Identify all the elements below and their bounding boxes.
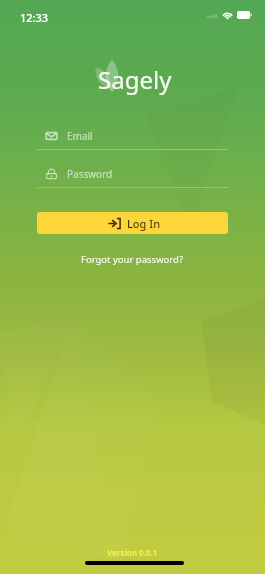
staticText: Version 0.0.1 (107, 547, 158, 558)
button[interactable]: Email (37, 127, 228, 150)
staticText: Log In (127, 216, 161, 231)
staticText: Sagely (98, 63, 172, 96)
button[interactable]: Log In (37, 212, 228, 234)
staticText: 12:33 (20, 10, 49, 25)
button[interactable]: Password (37, 165, 228, 188)
staticText: Email (67, 129, 93, 143)
button[interactable]: Forgot your password? (73, 250, 192, 269)
staticText: Password (67, 167, 113, 181)
